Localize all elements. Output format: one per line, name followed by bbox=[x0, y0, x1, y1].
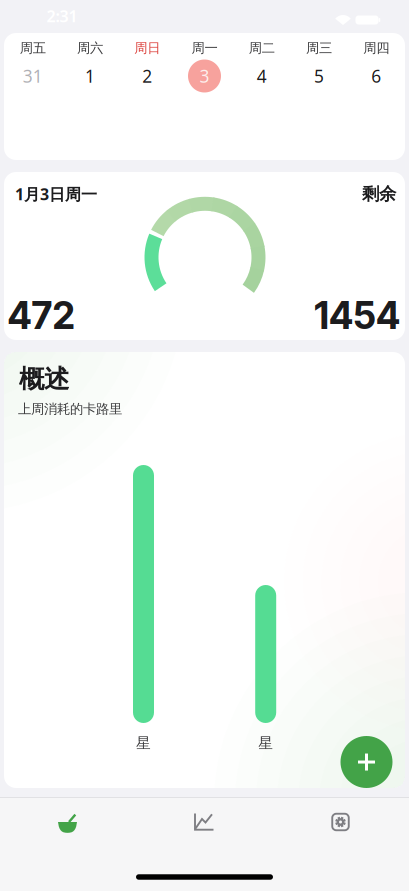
button[interactable]: 31 bbox=[4, 58, 61, 94]
staticText: 概述 bbox=[19, 363, 69, 394]
staticText: 4 bbox=[257, 64, 267, 87]
button[interactable]: Food bbox=[0, 797, 136, 847]
button[interactable]: 2 bbox=[119, 58, 176, 94]
staticText: 2 bbox=[142, 64, 152, 87]
staticText: 3 bbox=[199, 64, 209, 87]
button[interactable]: Settings bbox=[272, 797, 409, 847]
staticText: 上周消耗的卡路里 bbox=[18, 401, 122, 417]
staticText: 31 bbox=[23, 64, 43, 87]
staticText: 星 bbox=[258, 734, 273, 752]
staticText: 周日 bbox=[134, 40, 160, 56]
button[interactable]: 3 bbox=[176, 58, 233, 94]
button[interactable]: 1 bbox=[61, 58, 119, 94]
button[interactable]: Charts bbox=[136, 797, 272, 847]
staticText: 周五 bbox=[20, 40, 46, 56]
staticText: 周二 bbox=[249, 40, 275, 56]
staticText: 1 bbox=[85, 64, 95, 87]
staticText: 472 bbox=[7, 293, 74, 338]
staticText: 周一 bbox=[191, 40, 217, 56]
staticText: 周六 bbox=[77, 40, 103, 56]
staticText: 剩余 bbox=[362, 183, 396, 205]
button[interactable]: 6 bbox=[348, 58, 405, 94]
staticText: 1454 bbox=[314, 293, 400, 338]
staticText: 周三 bbox=[306, 40, 332, 56]
staticText: 周四 bbox=[363, 40, 389, 56]
button[interactable]: 4 bbox=[233, 58, 290, 94]
staticText: 6 bbox=[371, 64, 381, 87]
staticText: 星 bbox=[136, 734, 151, 752]
button[interactable]: Add bbox=[340, 736, 392, 788]
staticText: 1月3日周一 bbox=[15, 183, 97, 205]
staticText: 2:31 bbox=[46, 5, 77, 27]
button[interactable]: 5 bbox=[290, 58, 348, 94]
staticText: 5 bbox=[314, 64, 324, 87]
